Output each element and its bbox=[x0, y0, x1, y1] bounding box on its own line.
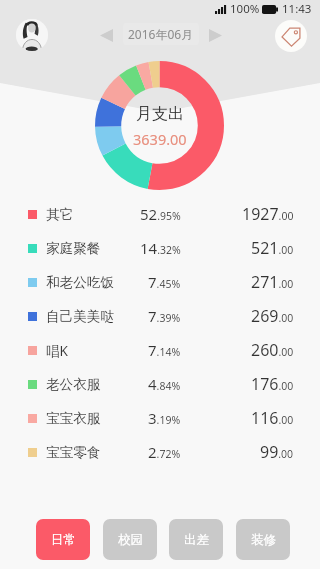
staticText: 自己美美哒 bbox=[46, 308, 114, 325]
staticText: 52.95% bbox=[140, 204, 181, 224]
button[interactable]: 家庭聚餐 bbox=[0, 231, 320, 265]
staticText: 100% bbox=[230, 1, 260, 17]
staticText: 14.32% bbox=[140, 238, 181, 258]
button[interactable]: 唱K bbox=[0, 333, 320, 367]
button[interactable]: 宝宝衣服 bbox=[0, 401, 320, 435]
staticText: 家庭聚餐 bbox=[46, 240, 101, 257]
button[interactable]: 老公衣服 bbox=[0, 367, 320, 401]
staticText: 260.00 bbox=[251, 339, 294, 361]
staticText: 7.14% bbox=[148, 340, 181, 360]
staticText: 和老公吃饭 bbox=[46, 274, 114, 291]
button[interactable]: 其它 bbox=[0, 197, 320, 231]
staticText: 宝宝衣服 bbox=[46, 410, 101, 427]
staticText: 月支出 bbox=[136, 104, 184, 124]
button[interactable]: 校园 bbox=[103, 519, 157, 560]
staticText: 日常 bbox=[51, 532, 76, 548]
staticText: 2.72% bbox=[148, 442, 181, 462]
button[interactable]: Tags bbox=[275, 20, 307, 52]
staticText: 3639.00 bbox=[133, 129, 187, 149]
button[interactable]: 宝宝零食 bbox=[0, 435, 320, 469]
staticText: 176.00 bbox=[251, 373, 294, 395]
staticText: 269.00 bbox=[251, 305, 294, 327]
button[interactable]: 出差 bbox=[169, 519, 223, 560]
staticText: 校园 bbox=[118, 532, 143, 548]
staticText: 3.19% bbox=[148, 408, 181, 428]
staticText: 116.00 bbox=[251, 407, 294, 429]
button[interactable]: 2016年06月 bbox=[123, 23, 199, 45]
staticText: 装修 bbox=[251, 532, 276, 548]
staticText: 7.39% bbox=[148, 306, 181, 326]
button[interactable]: 日常 bbox=[36, 519, 90, 560]
staticText: 出差 bbox=[184, 532, 209, 548]
button[interactable]: Next month bbox=[207, 27, 223, 43]
staticText: 11:43 bbox=[282, 1, 312, 17]
staticText: 99.00 bbox=[260, 441, 294, 463]
staticText: 2016年06月 bbox=[128, 26, 194, 42]
staticText: 老公衣服 bbox=[46, 376, 101, 393]
staticText: 唱K bbox=[46, 341, 69, 360]
staticText: 宝宝零食 bbox=[46, 444, 101, 461]
staticText: 1927.00 bbox=[242, 203, 294, 225]
button[interactable]: 装修 bbox=[236, 519, 290, 560]
staticText: 7.45% bbox=[148, 272, 181, 292]
button[interactable]: 自己美美哒 bbox=[0, 299, 320, 333]
button[interactable]: Previous month bbox=[98, 27, 114, 43]
staticText: 其它 bbox=[46, 206, 74, 223]
staticText: 4.84% bbox=[148, 374, 181, 394]
staticText: 271.00 bbox=[251, 271, 294, 293]
button[interactable]: Profile bbox=[16, 19, 48, 51]
button[interactable]: 和老公吃饭 bbox=[0, 265, 320, 299]
staticText: 521.00 bbox=[251, 237, 294, 259]
